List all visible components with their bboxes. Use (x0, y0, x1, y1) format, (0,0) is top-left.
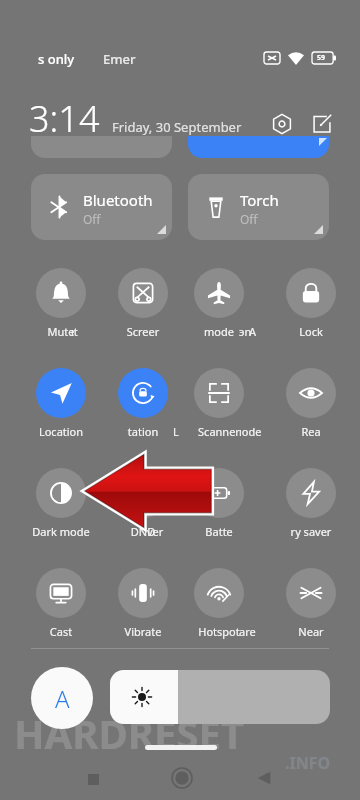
button[interactable]: Torch (188, 174, 329, 240)
staticText: 59 (317, 53, 326, 63)
staticText: Screer (98, 324, 188, 339)
button[interactable]: Hotspot (194, 568, 244, 618)
button[interactable]: Location (36, 368, 86, 418)
button[interactable]: Dark mode (36, 468, 86, 518)
button[interactable]: DND (118, 468, 168, 518)
staticText: .INFO (285, 752, 331, 774)
button[interactable]: Scanner (194, 368, 244, 418)
staticText: HARDRESET (14, 706, 244, 760)
staticText: Friday, 30 September (112, 118, 242, 136)
staticText: Emer (103, 50, 136, 68)
staticText: ϶n (239, 324, 252, 339)
button[interactable]: ry saver (286, 468, 336, 518)
staticText: Hotspot (174, 624, 264, 639)
button[interactable]: Auto brightness (31, 667, 93, 729)
staticText: A (249, 324, 257, 339)
staticText: ver (147, 524, 164, 539)
staticText: Off (240, 211, 258, 227)
button[interactable]: Mute (36, 268, 86, 318)
button[interactable]: Screer (118, 268, 168, 318)
staticText: 3:14 (29, 94, 100, 143)
staticText: Cast (16, 624, 106, 639)
button[interactable]: Vibrate (118, 568, 168, 618)
button[interactable]: Edit (311, 113, 333, 135)
button[interactable]: Settings (271, 113, 293, 135)
staticText: Mute (16, 324, 106, 339)
button[interactable] (188, 136, 329, 158)
staticText: Torch (240, 190, 279, 210)
staticText: Scanner (174, 424, 264, 439)
staticText: are (239, 624, 256, 639)
button[interactable]: Recents (82, 768, 104, 790)
staticText: ry saver (266, 524, 356, 539)
staticText: Off (83, 211, 101, 227)
staticText: Near (266, 624, 356, 639)
staticText: L (173, 424, 179, 439)
button[interactable]: Back (252, 766, 276, 790)
button[interactable]: Rea (286, 368, 336, 418)
button[interactable]: Near (286, 568, 336, 618)
staticText: Dark mode (16, 524, 106, 539)
button[interactable]: tation (118, 368, 168, 418)
button[interactable]: Bluetooth (31, 174, 172, 240)
staticText: Vibrate (98, 624, 188, 639)
staticText: Lock (266, 324, 356, 339)
staticText: Battе (174, 524, 264, 539)
button[interactable]: Home (169, 765, 195, 791)
button[interactable] (31, 136, 172, 158)
staticText: ıt (71, 324, 78, 339)
button[interactable]: Battе (194, 468, 244, 518)
staticText: Location (16, 424, 106, 439)
staticText: ıode (239, 424, 262, 439)
staticText: A (55, 682, 70, 715)
staticText: s only (38, 50, 75, 68)
staticText: DND (98, 524, 188, 539)
button[interactable]: Lock (286, 268, 336, 318)
button[interactable]: Cast (36, 568, 86, 618)
staticText: Bluetooth (83, 190, 153, 210)
button[interactable] (110, 670, 330, 724)
staticText: tation (98, 424, 188, 439)
button[interactable]: mode (194, 268, 244, 318)
staticText: mode (174, 324, 264, 339)
staticText: Rea (266, 424, 356, 439)
